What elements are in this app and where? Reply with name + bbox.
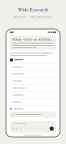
staticText: 深度研究 · 一键生成研究报告 (13, 15, 52, 19)
staticText: 帮我做一份关于 AI 的深度研究报告 (12, 38, 54, 41)
staticText: Wide Research (17, 6, 48, 13)
